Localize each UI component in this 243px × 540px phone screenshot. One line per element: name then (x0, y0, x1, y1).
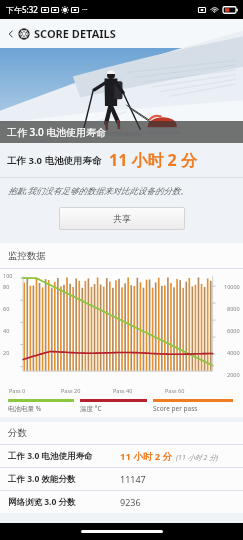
staticText: 网络浏览 3.0 分数 (8, 496, 120, 508)
staticText: 下午5:32 (6, 4, 38, 15)
staticText: Pass 60 (165, 387, 217, 394)
staticText: (11 小时 2 分) (176, 453, 219, 463)
staticText: 6000 (227, 327, 240, 334)
staticText: SCORE DETAILS (34, 26, 116, 41)
staticText: 工作 3.0 电池使用寿命 (7, 125, 107, 139)
staticText: 温度 °C (80, 404, 102, 413)
staticText: 11 小时 2 分 (120, 450, 173, 463)
staticText: Score per pass (153, 404, 198, 413)
staticText: 分数 (8, 427, 27, 439)
button[interactable]: Back (3, 26, 18, 41)
staticText: 监控数据 (8, 250, 46, 262)
staticText: 工作 3.0 电池使用寿命 (7, 154, 102, 167)
staticText: 100 (3, 272, 13, 279)
staticText: 11147 (120, 473, 146, 485)
staticText: 8000 (227, 305, 240, 312)
button[interactable]: 工作 3.0 电池使用寿命 (0, 445, 243, 467)
button[interactable]: 网络浏览 3.0 分数 (0, 491, 243, 513)
staticText: 共享 (113, 213, 131, 224)
staticText: 工作 3.0 电池使用寿命 (8, 450, 120, 462)
staticText: Pass 20 (61, 387, 113, 394)
staticText: 60 (3, 305, 10, 312)
staticText: 4000 (227, 349, 240, 356)
staticText: Pass 40 (113, 387, 165, 394)
staticText: 80 (3, 283, 10, 290)
button[interactable]: Home (81, 530, 163, 533)
staticText: 40 (3, 327, 10, 334)
staticText: 抱歉,我们没有足够的数据来对比此设备的分数。 (8, 185, 189, 197)
staticText: Pass 0 (9, 387, 61, 394)
staticText: 9236 (120, 496, 141, 508)
staticText: 10000 (224, 283, 240, 290)
staticText: 工作 3.0 效能分数 (8, 473, 120, 485)
staticText: 电池电量 % (8, 404, 42, 413)
staticText: 2000 (227, 371, 240, 378)
staticText: 20 (3, 349, 10, 356)
button[interactable]: 工作 3.0 效能分数 (0, 468, 243, 490)
staticText: ··· (82, 5, 88, 15)
staticText: 11 小时 2 分 (109, 149, 197, 171)
button[interactable]: 共享 (59, 207, 185, 230)
